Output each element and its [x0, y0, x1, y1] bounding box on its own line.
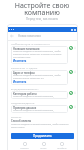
staticText: ПОДТВЕРЖДЕНИЕ [11, 101, 35, 104]
other: More [74, 105, 76, 109]
staticText: Способ оплаты [11, 119, 32, 123]
other: More [74, 46, 76, 50]
other: Back [10, 34, 14, 38]
staticText: Главная [20, 147, 29, 150]
staticText: Перед тем, как начать [0, 17, 84, 21]
staticText: Поиск [40, 147, 47, 150]
button[interactable]: Название компании [11, 46, 76, 64]
staticText: Укажите сведения о вашей компании, чтобы… [11, 123, 72, 129]
button[interactable]: Поиск [39, 142, 48, 150]
button[interactable]: Проверка данных [11, 105, 76, 113]
staticText: Адрес и телефон [13, 71, 35, 74]
button[interactable]: Категория работы [11, 91, 76, 99]
staticText: Укажите сведения о вашей компании, [13, 95, 54, 98]
staticText: Укажите сведения о вашей компании, [13, 109, 54, 112]
button[interactable]: Профиль [56, 142, 68, 150]
staticText: Укажите сведения о вашей компании, чтобы… [13, 74, 66, 80]
staticText: Название компании [13, 47, 40, 50]
staticText: Настройте свою компанию [0, 1, 84, 17]
staticText: КОНТАКТЫ И АДРЕС [11, 66, 38, 69]
other: More [74, 91, 76, 95]
button[interactable]: Главная [19, 142, 30, 150]
staticText: Профиль [57, 147, 67, 150]
staticText: ОПЛАТА [11, 115, 22, 118]
staticText: Укажите сведения о вашей компании, чтобы… [13, 50, 66, 59]
button[interactable]: Продолжить [11, 133, 74, 139]
staticText: Продолжить [33, 134, 52, 138]
other: More [74, 70, 76, 74]
staticText: ВИД ДЕЯТЕЛЬНОСТИ [11, 87, 39, 90]
staticText: Категория работы [13, 92, 37, 95]
staticText: Изменить [13, 80, 27, 84]
staticText: ИНФОРМАЦИЯ О КОМПАНИИ [11, 42, 50, 45]
staticText: Новая компания [18, 34, 41, 38]
staticText: Проверка данных [13, 106, 37, 109]
button[interactable]: Адрес и телефон [11, 70, 76, 85]
staticText: Изменить [13, 59, 27, 63]
